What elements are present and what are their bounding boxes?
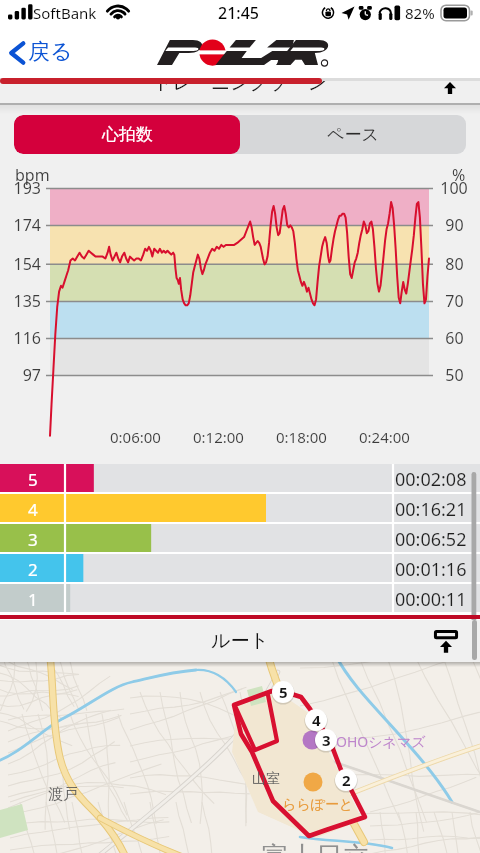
staticText: 00:16:21	[395, 497, 467, 522]
staticText: 3	[322, 730, 331, 750]
staticText: 4	[28, 498, 38, 521]
staticText: 154	[13, 253, 41, 275]
staticText: 渡戸	[48, 785, 78, 804]
button[interactable]: ペース	[240, 115, 466, 154]
staticText: 116	[13, 327, 41, 349]
staticText: 富士日立	[262, 840, 370, 853]
button[interactable]: 戻る	[5, 31, 74, 75]
staticText: 3	[28, 528, 38, 551]
button[interactable]: 3	[0, 524, 480, 554]
button[interactable]: 1	[0, 584, 480, 614]
other: Expand route	[434, 629, 458, 653]
staticText: 193	[13, 177, 41, 199]
staticText: 82%	[405, 3, 435, 23]
staticText: 50	[445, 364, 464, 386]
staticText: 1	[28, 588, 38, 611]
button[interactable]: トレーニングゾーン	[0, 78, 480, 104]
other: Collapse training zones	[444, 82, 456, 94]
staticText: 80	[445, 253, 464, 275]
staticText: 0:06:00	[110, 427, 161, 447]
staticText: 90	[445, 214, 464, 236]
staticText: 00:00:11	[395, 587, 467, 612]
staticText: 60	[445, 327, 464, 349]
staticText: bpm	[15, 164, 50, 186]
staticText: 00:02:08	[395, 467, 467, 492]
staticText: SoftBank	[33, 3, 97, 23]
button[interactable]: 2	[0, 554, 480, 584]
staticText: OHOシネマズ	[336, 732, 426, 751]
staticText: 00:06:52	[395, 527, 467, 552]
staticText: ルート	[211, 629, 269, 653]
staticText: 5	[28, 468, 38, 491]
staticText: トレーニングゾーン	[153, 78, 328, 95]
staticText: 21:45	[218, 2, 259, 24]
staticText: 174	[13, 214, 41, 236]
button[interactable]: ルート	[0, 620, 480, 662]
staticText: ペース	[327, 124, 379, 145]
staticText: %	[452, 164, 466, 186]
staticText: 00:01:16	[395, 557, 467, 582]
staticText: 100	[440, 177, 468, 199]
staticText: 0:24:00	[359, 427, 410, 447]
staticText: 戻る	[28, 38, 73, 66]
button[interactable]: 心拍数	[14, 115, 240, 154]
staticText: 山室	[252, 770, 280, 788]
staticText: 70	[445, 290, 464, 312]
staticText: 0:12:00	[193, 427, 244, 447]
staticText: ららぽーと	[282, 796, 354, 814]
button[interactable]: 5	[0, 464, 480, 494]
staticText: 2	[342, 770, 351, 790]
staticText: 5	[279, 682, 288, 702]
staticText: 0:18:00	[276, 427, 327, 447]
button[interactable]: 4	[0, 494, 480, 524]
staticText: 135	[13, 290, 41, 312]
staticText: 2	[28, 558, 38, 581]
staticText: 97	[22, 364, 41, 386]
staticText: 心拍数	[102, 124, 153, 145]
staticText: 4	[312, 710, 321, 730]
